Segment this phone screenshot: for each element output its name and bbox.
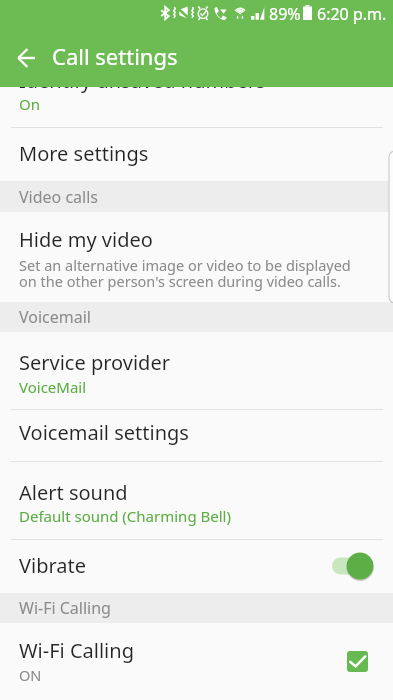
staticText: Voicemail settings	[19, 419, 189, 446]
staticText: More settings	[19, 140, 149, 167]
staticText: Default sound (Charming Bell)	[19, 506, 231, 526]
staticText: Identify unsaved numbers	[19, 87, 266, 94]
button[interactable]: More settings	[0, 128, 393, 181]
button[interactable]: Service provider	[0, 332, 393, 409]
button[interactable]: Vibrate	[0, 540, 393, 593]
staticText: Call settings	[52, 41, 178, 71]
staticText: Video calls	[19, 186, 99, 208]
button[interactable]: Wi-Fi Calling	[0, 623, 393, 700]
staticText: Hide my video	[19, 226, 153, 253]
button[interactable]: Identify unsaved numbers	[0, 87, 393, 127]
staticText: On	[19, 94, 40, 114]
staticText: Vibrate	[19, 552, 87, 579]
button[interactable]: Alert sound	[0, 462, 393, 539]
staticText: Wi-Fi Calling	[19, 597, 111, 619]
staticText: Voicemail	[19, 306, 91, 328]
staticText: VoiceMail	[19, 377, 87, 397]
staticText: Set an alternative image or video to be …	[19, 255, 351, 291]
button[interactable]: Back	[6, 38, 46, 78]
staticText: Service provider	[19, 349, 170, 376]
staticText: 6:20 p.m.	[317, 3, 387, 25]
staticText: 89%	[269, 3, 301, 25]
staticText: Alert sound	[19, 479, 128, 506]
button[interactable]: Voicemail settings	[0, 410, 393, 461]
staticText: ON	[19, 665, 42, 685]
staticText: Wi-Fi Calling	[19, 637, 134, 664]
button[interactable]: Hide my video	[0, 212, 393, 302]
